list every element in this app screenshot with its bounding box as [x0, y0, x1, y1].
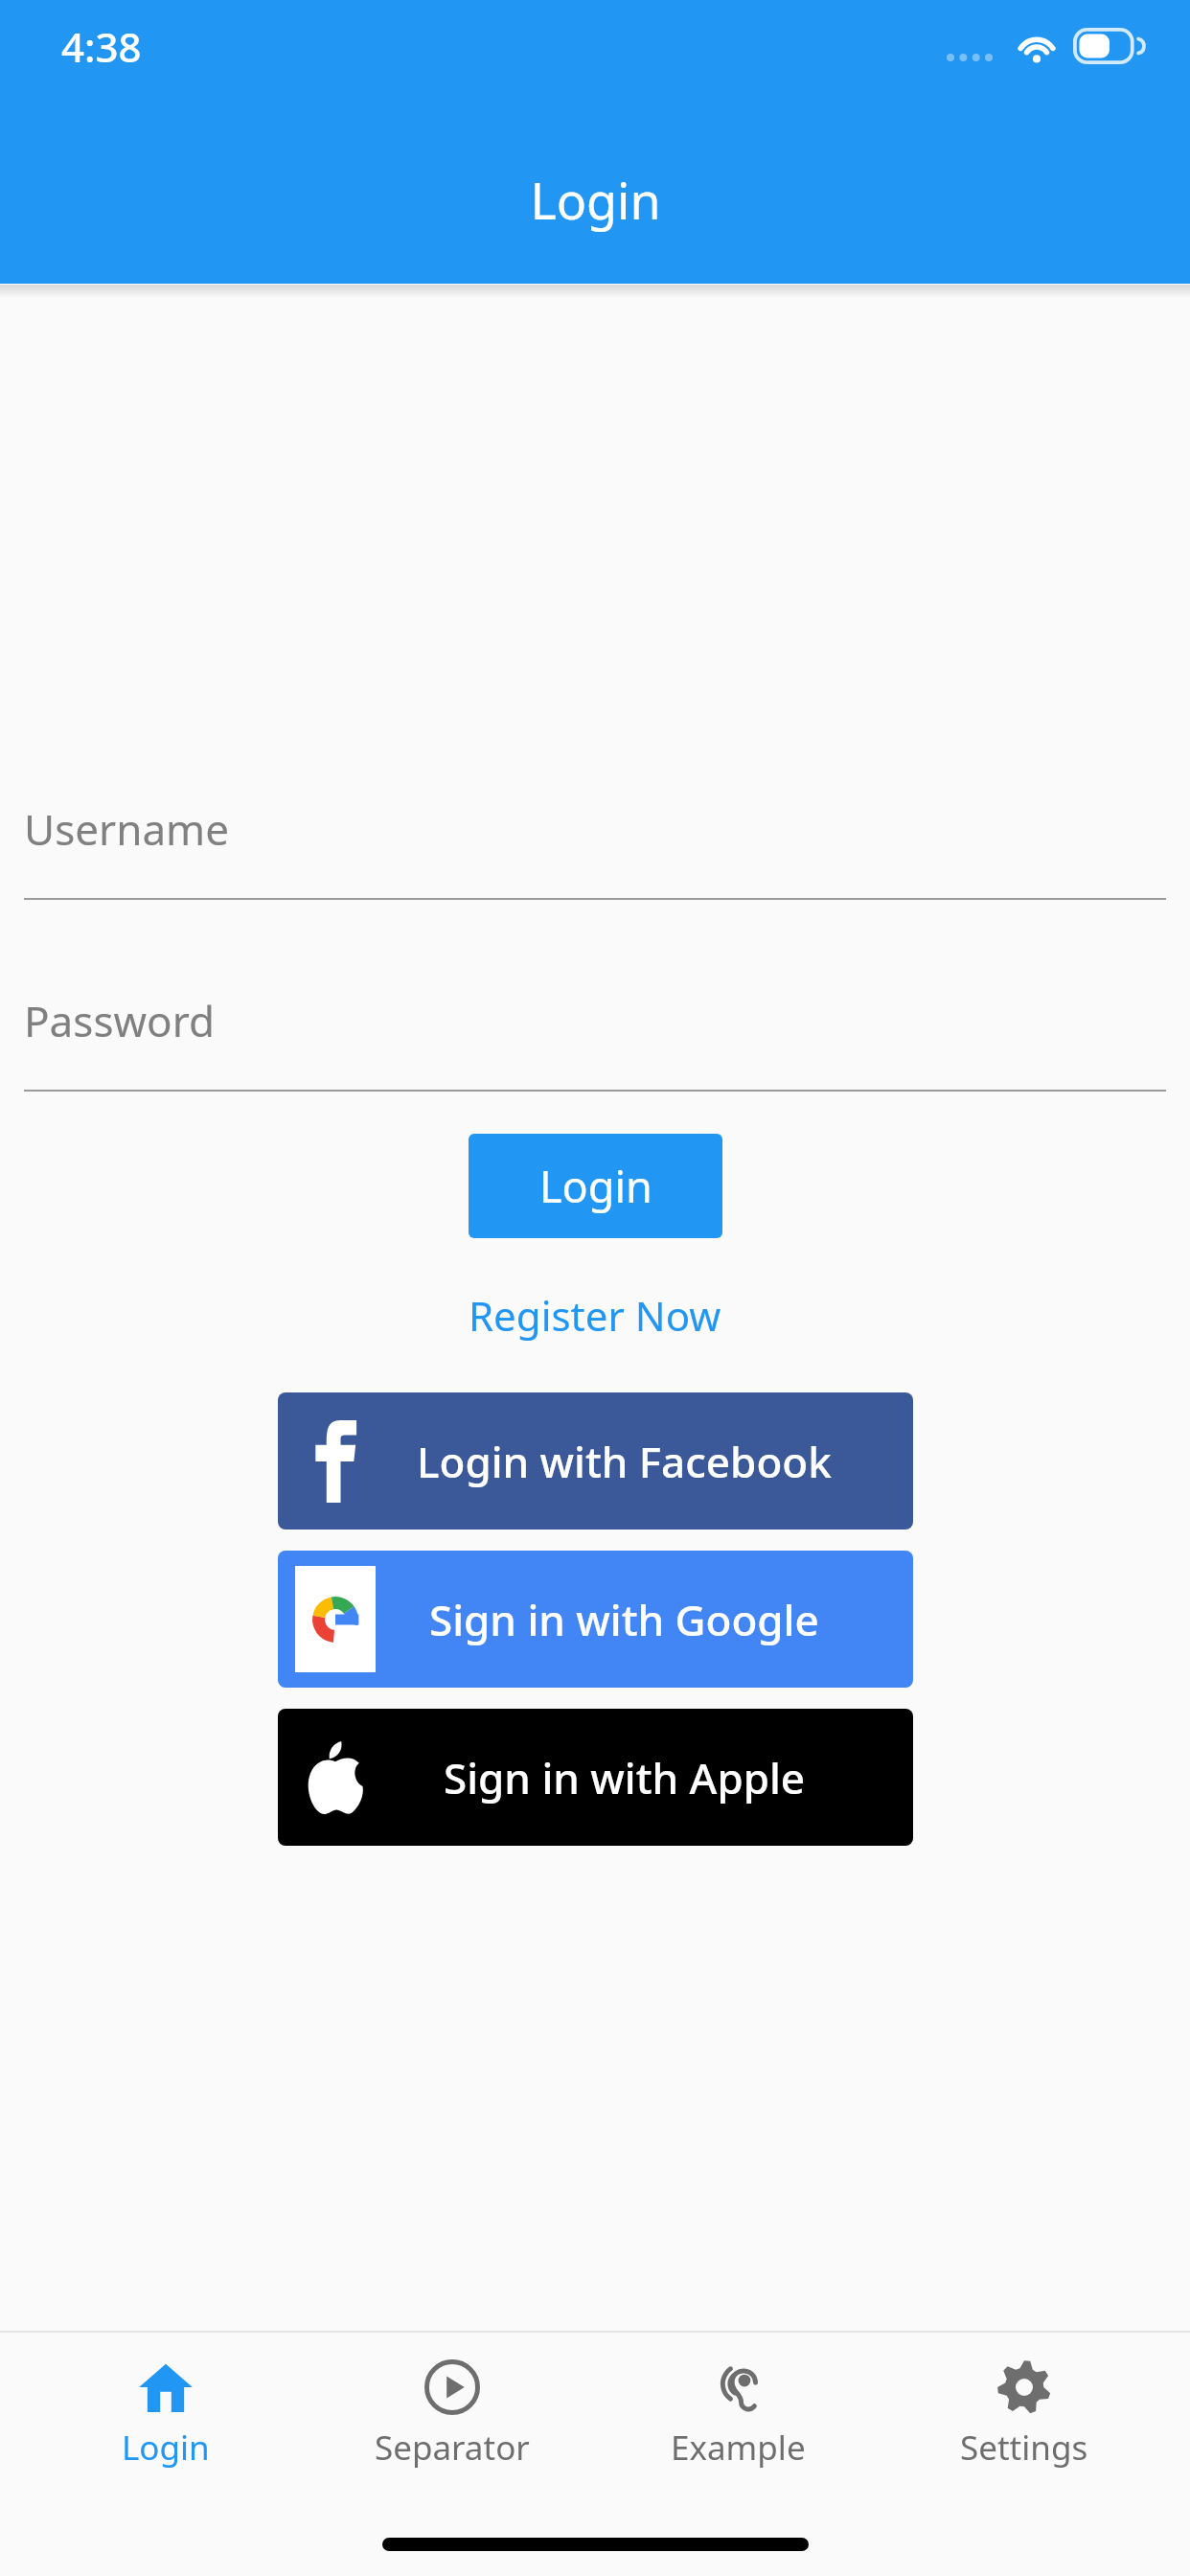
staticText: Separator — [375, 2425, 530, 2471]
button[interactable]: Password — [24, 992, 1166, 1092]
button[interactable]: Settings — [904, 2333, 1144, 2486]
other: Separator — [424, 2359, 480, 2415]
button[interactable]: Username — [24, 800, 1166, 900]
staticText: Settings — [960, 2425, 1088, 2471]
button[interactable]: Sign in with Apple — [278, 1709, 913, 1846]
button[interactable]: Login with Facebook — [278, 1392, 913, 1529]
button[interactable]: Register Now — [453, 1280, 737, 1350]
staticText: Register Now — [469, 1288, 721, 1343]
staticText: Sign in with Apple — [444, 1749, 806, 1806]
staticText: 4:38 — [61, 19, 142, 74]
button[interactable]: Separator — [332, 2333, 572, 2486]
staticText: Login with Facebook — [417, 1433, 832, 1490]
button[interactable]: Sign in with Google — [278, 1551, 913, 1688]
staticText: Example — [671, 2425, 806, 2471]
staticText: Sign in with Google — [429, 1591, 819, 1648]
staticText: Password — [24, 992, 216, 1049]
other: Login — [138, 2359, 194, 2415]
other: Settings — [996, 2359, 1052, 2415]
staticText: Login — [530, 166, 661, 234]
staticText: Username — [24, 800, 230, 858]
button[interactable]: Login — [46, 2333, 286, 2486]
button[interactable]: Example — [618, 2333, 858, 2486]
staticText: Login — [539, 1157, 652, 1215]
staticText: Login — [122, 2425, 210, 2471]
other: Example — [710, 2359, 766, 2415]
button[interactable]: Login — [469, 1134, 722, 1238]
